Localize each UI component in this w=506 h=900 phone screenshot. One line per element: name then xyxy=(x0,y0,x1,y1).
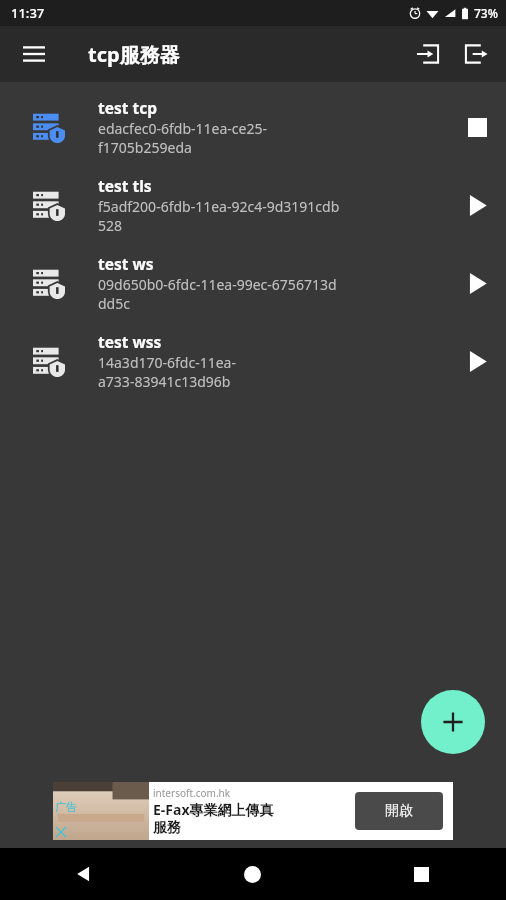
button[interactable]: Add server xyxy=(421,690,485,754)
button[interactable]: 開啟 xyxy=(355,792,443,830)
button[interactable]: Back xyxy=(0,848,168,900)
button[interactable]: Export xyxy=(452,30,500,78)
staticText: 開啟 xyxy=(385,802,413,820)
button[interactable]: Open navigation drawer xyxy=(10,30,58,78)
button[interactable]: Start server xyxy=(448,166,506,244)
staticText: 09d650b0-6fdc-11ea-99ec-6756713d dd5c xyxy=(98,275,337,313)
staticText: 11:37 xyxy=(11,4,45,22)
button[interactable]: Close ad xyxy=(53,824,69,840)
button[interactable]: Start server xyxy=(448,322,506,400)
staticText: E-Fax專業網上傳真 服務 xyxy=(153,800,274,836)
staticText: test tls xyxy=(98,175,152,196)
staticText: tcp服務器 xyxy=(88,41,180,68)
staticText: test tcp xyxy=(98,97,158,118)
button[interactable]: Home xyxy=(168,848,337,900)
button[interactable]: test ws xyxy=(0,244,506,322)
button[interactable]: Recent apps xyxy=(337,848,506,900)
button[interactable]: test wss xyxy=(0,322,506,400)
staticText: 广告 xyxy=(55,800,77,814)
button[interactable]: Start server xyxy=(448,244,506,322)
staticText: 14a3d170-6fdc-11ea- a733-83941c13d96b xyxy=(98,353,236,391)
staticText: test wss xyxy=(98,331,162,352)
button[interactable]: 广告 xyxy=(53,782,453,840)
staticText: 73% xyxy=(474,5,498,21)
staticText: edacfec0-6fdb-11ea-ce25- f1705b259eda xyxy=(98,119,267,157)
staticText: intersoft.com.hk xyxy=(153,786,231,800)
button[interactable]: Stop server xyxy=(448,88,506,166)
button[interactable]: test tls xyxy=(0,166,506,244)
button[interactable]: Import xyxy=(404,30,452,78)
button[interactable]: test tcp xyxy=(0,88,506,166)
staticText: f5adf200-6fdb-11ea-92c4-9d3191cdb 528 xyxy=(98,197,340,235)
staticText: test ws xyxy=(98,253,154,274)
